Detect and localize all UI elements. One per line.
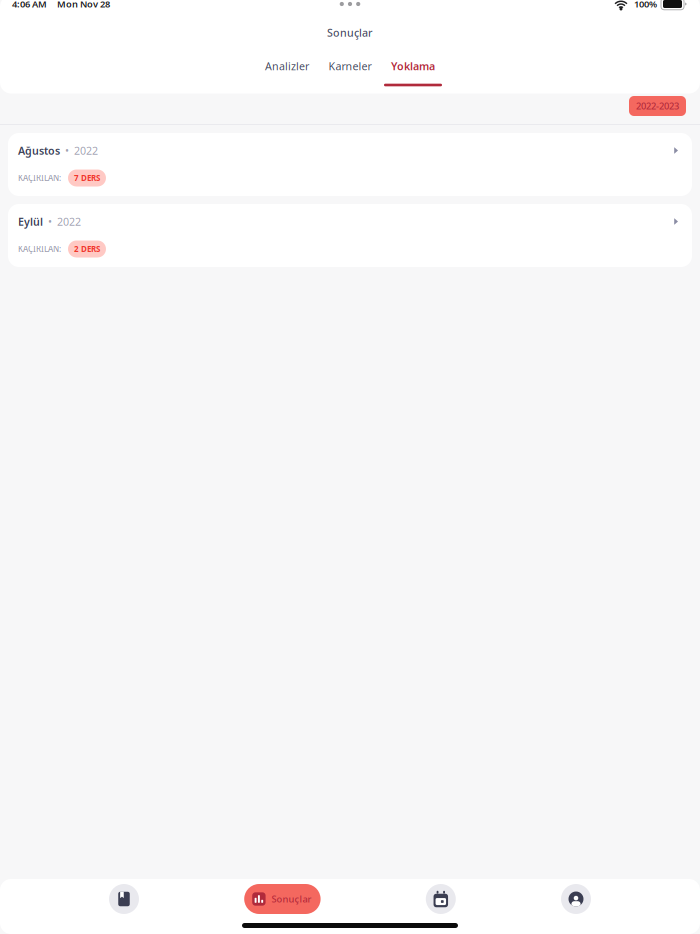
staticText: 2 DERS [74, 244, 100, 254]
staticText: KAÇIRILAN: [18, 173, 61, 183]
staticText: Mon Nov 28 [57, 0, 110, 10]
staticText: Yoklama [391, 59, 435, 73]
staticText: 100% [634, 0, 657, 10]
staticText: Eylül [18, 214, 43, 229]
staticText: KAÇIRILAN: [18, 244, 61, 254]
staticText: 2022 [57, 214, 81, 229]
staticText: 7 DERS [74, 173, 100, 183]
button[interactable]: Profil [561, 884, 591, 914]
staticText: • [48, 214, 52, 229]
staticText: 2022 [74, 143, 98, 158]
button[interactable]: Ağustos [8, 133, 692, 196]
button[interactable]: Takvim [426, 884, 456, 914]
staticText: Ağustos [18, 143, 60, 158]
staticText: Sonuçlar [272, 893, 312, 905]
button[interactable]: 2022-2023 [629, 96, 686, 116]
staticText: • [65, 143, 69, 158]
staticText: 2022-2023 [636, 100, 679, 112]
button[interactable]: Eylül [8, 204, 692, 267]
button[interactable]: Yoklama [382, 58, 443, 85]
button[interactable]: Karneler [319, 58, 380, 85]
button[interactable]: Analizler [256, 58, 317, 85]
button[interactable]: Kitaplık [109, 884, 139, 914]
staticText: Analizler [265, 59, 309, 73]
staticText: 4:06 AM [12, 0, 47, 10]
button[interactable]: Sonuçlar [244, 884, 321, 914]
staticText: Sonuçlar [327, 25, 373, 40]
staticText: Karneler [328, 59, 371, 73]
